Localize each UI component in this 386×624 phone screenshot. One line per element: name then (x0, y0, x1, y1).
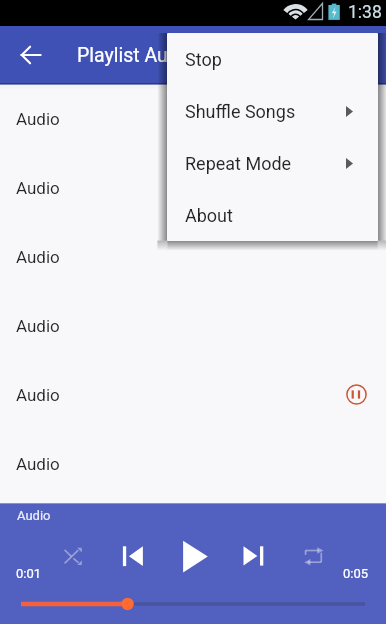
staticText: 0:05 (343, 566, 369, 581)
button[interactable]: Repeat (296, 536, 332, 572)
button[interactable]: Audio (0, 153, 386, 222)
button[interactable]: Next (236, 536, 272, 572)
button[interactable]: Audio (0, 291, 386, 360)
staticText: Repeat Mode (185, 153, 292, 174)
button[interactable]: Audio (0, 429, 386, 498)
staticText: Audio (16, 316, 60, 336)
button[interactable]: Repeat Mode (167, 137, 378, 189)
button[interactable]: About (167, 189, 378, 241)
button[interactable]: Seek bar (10, 592, 376, 616)
staticText: 1:38 (348, 2, 382, 23)
button[interactable]: Audio (0, 84, 386, 153)
staticText: Playlist Audio (77, 44, 195, 67)
staticText: Stop (185, 49, 222, 70)
staticText: 0:01 (16, 566, 42, 581)
button[interactable]: Audio (0, 360, 386, 429)
button[interactable]: Previous (115, 536, 151, 572)
staticText: Audio (16, 178, 60, 198)
button[interactable]: Shuffle Songs (167, 85, 378, 137)
staticText: Shuffle Songs (185, 101, 296, 122)
staticText: Audio (16, 385, 60, 405)
staticText: Audio (16, 109, 60, 129)
staticText: About (185, 205, 233, 226)
button[interactable]: Play (177, 532, 215, 572)
staticText: Audio (17, 508, 51, 523)
button[interactable]: Audio (0, 222, 386, 291)
staticText: Audio (16, 247, 60, 267)
button[interactable]: Stop (167, 33, 378, 85)
button[interactable]: Shuffle (55, 536, 91, 572)
button[interactable]: Back (14, 38, 48, 72)
staticText: Audio (16, 454, 60, 474)
